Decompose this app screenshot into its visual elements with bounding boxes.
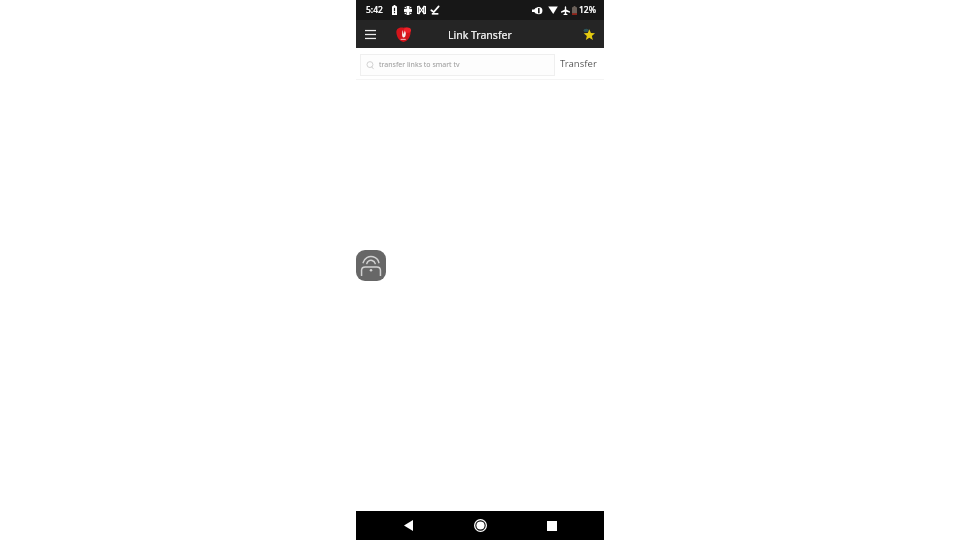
button[interactable]: App icon	[393, 20, 413, 48]
button[interactable]: transfer links to smart tv	[360, 54, 555, 76]
button[interactable]: Back	[388, 511, 428, 540]
staticText: Link Transfer	[448, 28, 512, 42]
button[interactable]: Home	[460, 511, 500, 540]
button[interactable]: Transfer	[560, 57, 597, 70]
staticText: 5:42	[366, 4, 383, 16]
button[interactable]: Recent apps	[532, 511, 572, 540]
button[interactable]: Cast to smart TV	[356, 250, 386, 281]
staticText: Transfer	[560, 57, 597, 70]
staticText: transfer links to smart tv	[379, 60, 460, 70]
button[interactable]: Favorites	[578, 23, 600, 45]
button[interactable]: Open navigation menu	[358, 20, 382, 48]
staticText: 12%	[579, 4, 596, 16]
